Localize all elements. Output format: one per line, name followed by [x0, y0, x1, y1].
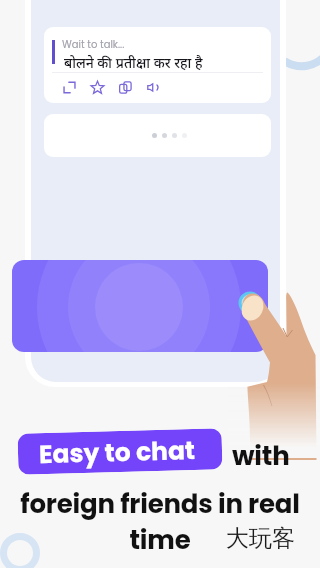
staticText: 大玩客: [226, 524, 295, 553]
button[interactable]: Favorite: [86, 76, 108, 98]
button[interactable]: Expand: [58, 76, 80, 98]
staticText: with: [232, 438, 290, 474]
staticText: Wait to talk...: [62, 37, 125, 51]
staticText: बोलने की प्रतीक्षा कर रहा है: [64, 55, 203, 73]
button[interactable]: Easy to chat: [17, 428, 222, 475]
button[interactable]: Speak: [142, 76, 164, 98]
button[interactable]: Wait to talk...: [44, 27, 271, 103]
button[interactable]: Copy: [114, 76, 136, 98]
button[interactable]: [12, 260, 268, 352]
button[interactable]: [44, 114, 271, 157]
staticText: Easy to chat: [39, 433, 196, 472]
staticText: foreign friends in real time: [0, 486, 320, 558]
